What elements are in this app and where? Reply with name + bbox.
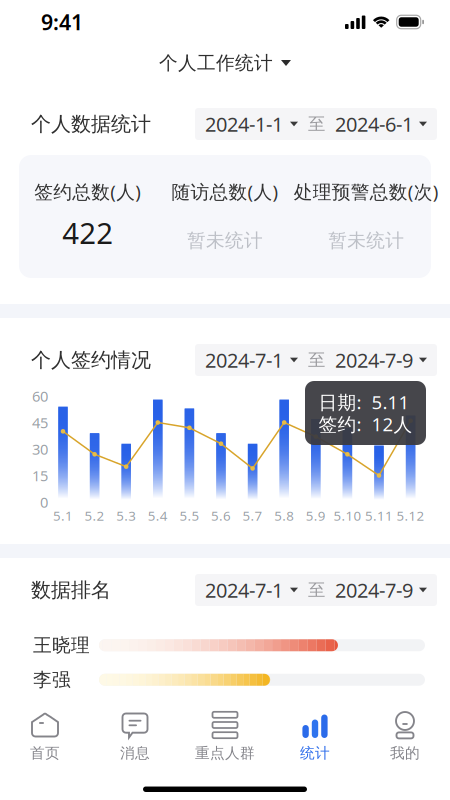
button[interactable]: 2024-7-1 [195,344,437,376]
staticText: 2024-6-1 [335,111,413,137]
staticText: 30 [32,439,48,459]
staticText: 5.12 [397,507,425,524]
button[interactable]: 2024-1-1 [195,108,437,140]
staticText: 5.3 [116,507,136,524]
staticText: 暂未统计 [328,229,404,252]
staticText: 5.2 [85,507,105,524]
staticText: 数据排名 [31,578,111,602]
staticText: 签约总数(人) [34,179,141,204]
staticText: 消息 [120,744,150,762]
staticText: 5.7 [243,507,263,524]
staticText: 5.10 [333,507,361,524]
staticText: 个人签约情况 [31,348,151,372]
staticText: 李强 [33,668,71,691]
button[interactable]: 首页 [0,703,90,763]
staticText: 重点人群 [195,744,255,762]
staticText: 5.8 [274,507,294,524]
staticText: 2024-7-1 [205,347,283,373]
staticText: 个人工作统计 [159,51,273,74]
staticText: 45 [32,413,48,432]
staticText: 统计 [300,744,330,762]
staticText: 至 [308,579,325,601]
staticText: 签约: 12人 [318,412,412,436]
staticText: 我的 [390,744,420,762]
staticText: 5.4 [148,507,168,524]
staticText: 60 [32,386,48,406]
staticText: 2024-1-1 [205,111,283,137]
staticText: 15 [32,466,48,485]
button[interactable]: 重点人群 [180,703,270,763]
staticText: 随访总数(人) [171,179,278,204]
staticText: 0 [40,492,48,512]
staticText: 5.6 [211,507,231,524]
staticText: 5.9 [306,507,326,524]
staticText: 至 [308,349,325,371]
staticText: 个人数据统计 [31,112,151,136]
button[interactable]: 消息 [90,703,180,763]
staticText: 422 [62,213,113,252]
staticText: 处理预警总数(次) [294,179,439,204]
staticText: 暂未统计 [187,229,263,252]
button[interactable]: 2024-7-1 [195,574,437,606]
staticText: 5.5 [179,507,199,524]
staticText: 2024-7-9 [335,347,413,373]
staticText: 2024-7-9 [335,577,413,603]
staticText: 日期: 5.11 [318,390,409,414]
button[interactable]: 统计 [270,703,360,763]
button[interactable]: 我的 [360,703,450,763]
staticText: 9:41 [41,8,83,36]
staticText: 至 [308,113,325,135]
staticText: 王晓理 [33,634,90,657]
staticText: 5.1 [53,507,73,524]
button[interactable]: 个人工作统计 [0,44,450,82]
staticText: 5.11 [365,507,393,524]
staticText: 首页 [30,744,60,762]
staticText: 2024-7-1 [205,577,283,603]
